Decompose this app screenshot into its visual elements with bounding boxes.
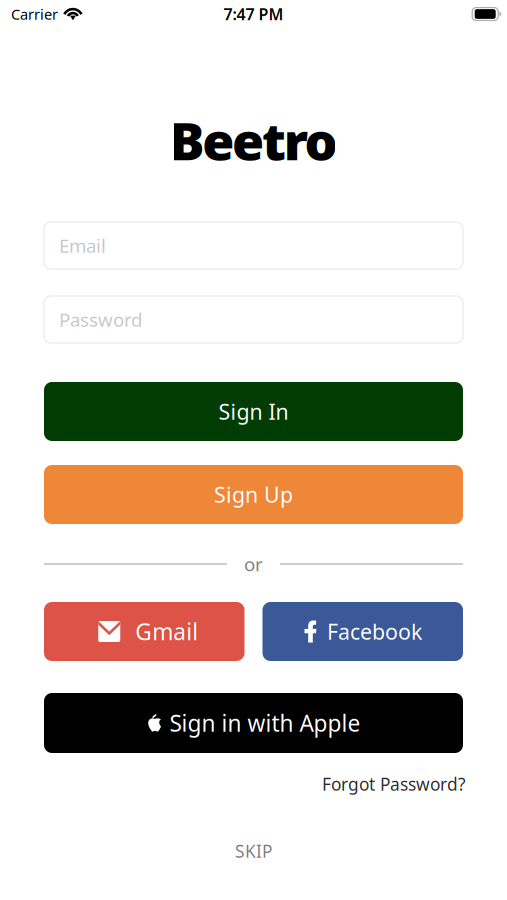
button[interactable]: Gmail (44, 602, 244, 661)
button[interactable]: Sign In (44, 382, 463, 441)
button[interactable]: Sign Up (44, 465, 463, 524)
staticText: Carrier (11, 4, 58, 24)
staticText: Sign Up (214, 480, 293, 509)
staticText: 7:47 PM (223, 3, 283, 25)
button[interactable]: Facebook (262, 602, 463, 661)
staticText: Facebook (327, 617, 422, 646)
staticText: Forgot Password? (322, 772, 466, 795)
staticText: Email (59, 233, 106, 258)
button[interactable]: Sign in with Apple (44, 693, 463, 753)
staticText: Gmail (135, 616, 198, 646)
staticText: Sign In (218, 397, 288, 426)
button[interactable]: Forgot Password? (44, 771, 466, 797)
staticText: Beetro (169, 105, 337, 175)
staticText: SKIP (235, 839, 272, 862)
staticText: Password (59, 307, 142, 332)
staticText: or (244, 552, 263, 576)
button[interactable]: SKIP (0, 838, 507, 864)
staticText: Sign in with Apple (169, 708, 360, 738)
